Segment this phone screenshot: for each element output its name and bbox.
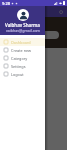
staticText: Vaibhav Sharma bbox=[5, 22, 40, 28]
staticText: Create new bbox=[11, 48, 32, 53]
button[interactable]: Category bbox=[0, 54, 45, 62]
staticText: Logout bbox=[11, 72, 24, 77]
staticText: vaibhav@gmail.com bbox=[6, 28, 40, 33]
button[interactable]: Settings bbox=[0, 62, 45, 70]
button[interactable]: Search bbox=[58, 9, 64, 15]
button[interactable] bbox=[0, 94, 67, 140]
button[interactable] bbox=[0, 48, 67, 94]
button[interactable]: Create new bbox=[0, 46, 45, 54]
staticText: Dashboard bbox=[11, 40, 31, 45]
button[interactable] bbox=[0, 0, 67, 150]
staticText: Category bbox=[11, 56, 28, 61]
button[interactable] bbox=[0, 140, 67, 150]
button[interactable]: Logout bbox=[0, 70, 45, 78]
button[interactable]: Dashboard bbox=[0, 38, 45, 46]
staticText: Settings bbox=[11, 64, 26, 69]
staticText: 9:28 bbox=[2, 1, 10, 6]
